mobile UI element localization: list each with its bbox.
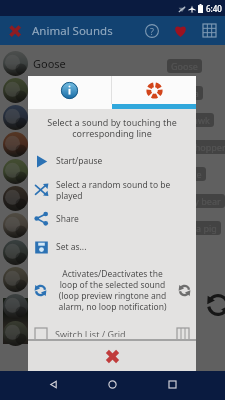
staticText: Activates/Deactivates the loop of the se…	[51, 268, 174, 312]
staticText: Animal Sounds	[32, 23, 113, 39]
staticText: Set as...	[56, 241, 87, 253]
button[interactable]: Grasshopper	[0, 131, 225, 158]
staticText: ?	[150, 25, 154, 37]
button[interactable]: Select a random sound to be played	[28, 175, 196, 204]
staticText: Goose	[171, 60, 198, 72]
staticText: Start/pause	[56, 155, 103, 167]
button[interactable]: Goose	[0, 50, 225, 77]
button[interactable]: Favorites	[166, 16, 195, 45]
staticText: Select a sound by touching the correspon…	[28, 116, 196, 140]
staticText: Hamster	[33, 272, 78, 287]
button[interactable]: Grouse	[0, 158, 225, 185]
button[interactable]: Share	[28, 204, 196, 233]
button[interactable]: Guinea pig	[0, 212, 225, 239]
staticText: Grouse	[171, 168, 202, 180]
button[interactable]: Grid view	[195, 16, 224, 45]
staticText: Gorilla	[33, 83, 67, 98]
staticText: Grasshopper	[33, 137, 100, 152]
staticText: Grizzly bear	[171, 195, 221, 207]
button[interactable]: Info tab	[28, 76, 111, 104]
button[interactable]: Gorilla	[0, 77, 225, 104]
staticText: Select a random sound to be played	[56, 179, 171, 201]
button[interactable]: Goshawk	[0, 104, 225, 131]
button[interactable]: Set as...	[28, 233, 196, 261]
staticText: Goshawk	[33, 110, 81, 125]
staticText: Grasshopper	[171, 141, 225, 153]
staticText: Hawk	[33, 326, 62, 341]
staticText: Grouse	[33, 164, 71, 179]
staticText: 6:40	[206, 3, 222, 14]
button[interactable]: Recent apps	[156, 371, 188, 400]
button[interactable]: Grizzly bear	[0, 185, 225, 212]
button[interactable]: Switch List / Grid	[28, 330, 196, 339]
staticText: Guinea pig	[171, 222, 217, 234]
button[interactable]: Help tab	[112, 76, 196, 104]
button[interactable]: Help	[137, 16, 166, 45]
button[interactable]: Close	[28, 341, 196, 372]
staticText: Switch List / Grid	[55, 328, 126, 337]
staticText: Gorilla	[171, 87, 199, 99]
button[interactable]: Hare	[0, 293, 225, 320]
button[interactable]: Hawk	[0, 320, 225, 347]
button[interactable]: Back	[37, 371, 69, 400]
button[interactable]: Gull	[0, 239, 225, 266]
button[interactable]: Home	[96, 371, 128, 400]
staticText: Grizzly bear	[33, 191, 94, 206]
staticText: Goshawk	[171, 114, 210, 126]
staticText: Guinea pig	[33, 218, 90, 233]
button[interactable]: Activates/Deactivates the loop of the se…	[28, 261, 196, 319]
staticText: Share	[56, 213, 79, 225]
button[interactable]: Hamster	[0, 266, 225, 293]
staticText: Goose	[33, 56, 66, 71]
button[interactable]: Start/pause	[28, 147, 196, 175]
staticText: Gull	[33, 245, 54, 260]
